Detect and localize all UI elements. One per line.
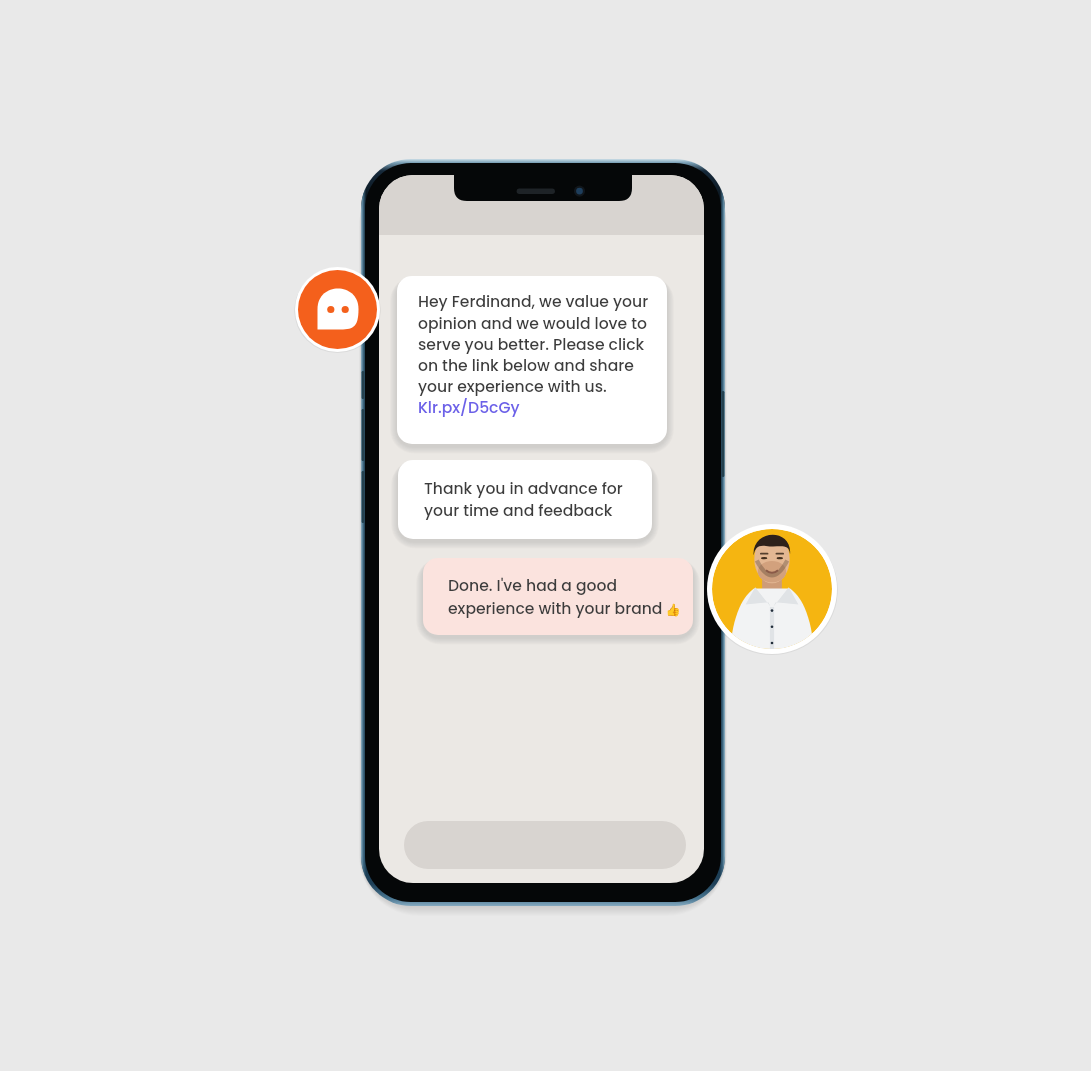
button[interactable]: Message input (404, 821, 686, 869)
button[interactable]: Done. I've had a good experience with yo… (423, 558, 693, 635)
staticText: Hey Ferdinand, we value your opinion and… (418, 291, 649, 418)
button[interactable]: Open chat (294, 266, 381, 353)
staticText: Done. I've had a good experience with yo… (448, 575, 681, 619)
button[interactable]: Hey Ferdinand, we value your opinion and… (397, 276, 667, 444)
button[interactable]: Thank you in advance for your time and f… (398, 460, 652, 539)
button[interactable]: Contact avatar (706, 523, 838, 655)
staticText: Thank you in advance for your time and f… (424, 478, 623, 521)
